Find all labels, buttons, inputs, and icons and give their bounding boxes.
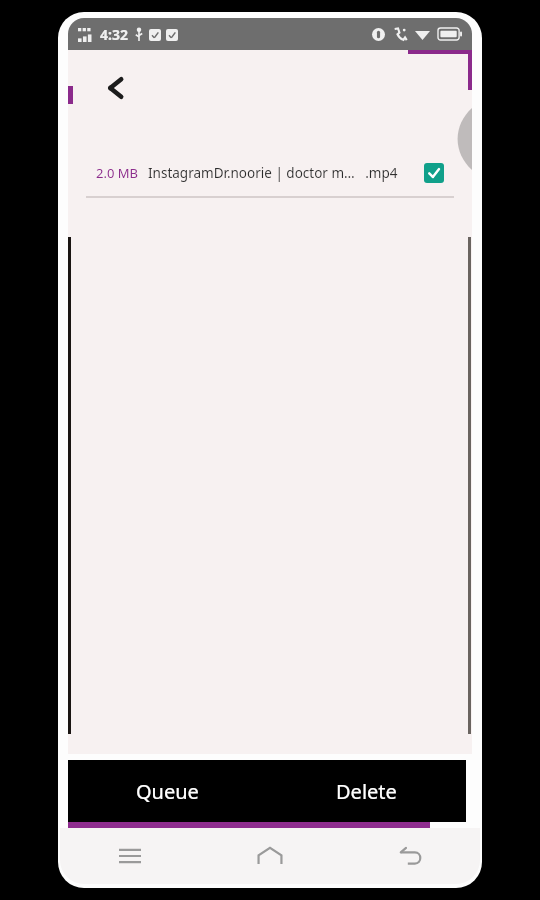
staticText: 2.0 MB <box>96 164 138 182</box>
button[interactable]: Selected <box>424 163 444 183</box>
button[interactable]: Delete <box>267 760 466 822</box>
staticText: 4:32 <box>100 25 128 44</box>
button[interactable]: Home <box>200 828 340 884</box>
staticText: Delete <box>336 778 397 805</box>
button[interactable]: Back <box>88 60 144 116</box>
staticText: InstagramDr.noorie | doctor m… .mp4 <box>148 164 398 182</box>
button[interactable]: 2.0 MB <box>78 150 462 198</box>
button[interactable]: Queue <box>68 760 267 822</box>
button[interactable]: Recent apps <box>60 828 200 884</box>
staticText: Queue <box>136 778 199 805</box>
button[interactable]: Back <box>340 828 480 884</box>
